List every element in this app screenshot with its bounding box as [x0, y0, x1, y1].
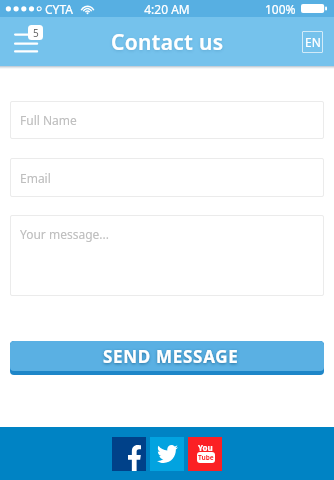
staticText: CYTA	[45, 1, 73, 17]
button[interactable]: Facebook	[112, 437, 146, 471]
button[interactable]: Twitter	[150, 437, 184, 471]
button[interactable]: Full Name	[10, 101, 324, 139]
staticText: EN	[305, 34, 321, 50]
button[interactable]: Menu	[8, 21, 46, 61]
staticText: Your message...	[20, 226, 109, 242]
staticText: 4:20 AM	[0, 1, 334, 17]
button[interactable]: Your message...	[10, 215, 324, 296]
staticText: Contact us	[111, 28, 224, 57]
staticText: 5	[33, 26, 39, 40]
staticText: Email	[20, 170, 51, 186]
staticText: 100%	[265, 1, 296, 17]
button[interactable]: SEND MESSAGE	[10, 341, 324, 375]
staticText: Full Name	[20, 112, 77, 128]
staticText: SEND MESSAGE	[103, 345, 239, 368]
button[interactable]: Email	[10, 158, 324, 197]
button[interactable]: YouTube	[188, 437, 222, 471]
staticText: You	[198, 442, 213, 451]
button[interactable]: Change language	[302, 31, 323, 53]
staticText: Tube	[198, 453, 214, 462]
